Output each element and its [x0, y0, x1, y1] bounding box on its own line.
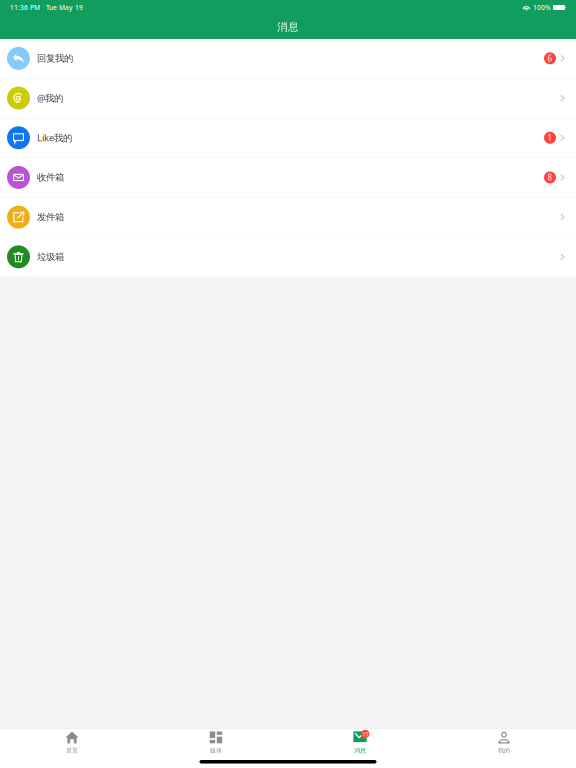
staticText: 回复我的: [37, 52, 73, 64]
button[interactable]: 版块: [144, 729, 288, 768]
staticText: 版块: [210, 746, 222, 754]
staticText: 8: [547, 172, 552, 183]
staticText: Like我的: [37, 131, 72, 144]
staticText: 1: [547, 132, 552, 143]
button[interactable]: 垃圾箱: [0, 237, 576, 277]
staticText: 首页: [66, 746, 78, 754]
staticText: 100%: [533, 3, 551, 12]
button[interactable]: 我的: [432, 729, 576, 768]
button[interactable]: Like我的: [0, 118, 576, 158]
staticText: 垃圾箱: [37, 251, 64, 263]
staticText: @我的: [37, 92, 63, 104]
button[interactable]: @我的: [0, 79, 576, 118]
button[interactable]: 回复我的: [0, 39, 576, 79]
staticText: 消息: [354, 746, 366, 754]
staticText: 我的: [498, 746, 510, 754]
staticText: Tue May 19: [46, 3, 83, 12]
button[interactable]: 发件箱: [0, 198, 576, 237]
staticText: 收件箱: [37, 172, 64, 183]
button[interactable]: 15: [288, 729, 432, 768]
button[interactable]: 首页: [0, 729, 144, 768]
staticText: 15: [362, 730, 368, 738]
staticText: 6: [547, 53, 552, 64]
staticText: 消息: [277, 20, 299, 34]
staticText: 11:36 PM: [10, 3, 40, 12]
button[interactable]: 收件箱: [0, 158, 576, 198]
staticText: 发件箱: [37, 211, 64, 223]
